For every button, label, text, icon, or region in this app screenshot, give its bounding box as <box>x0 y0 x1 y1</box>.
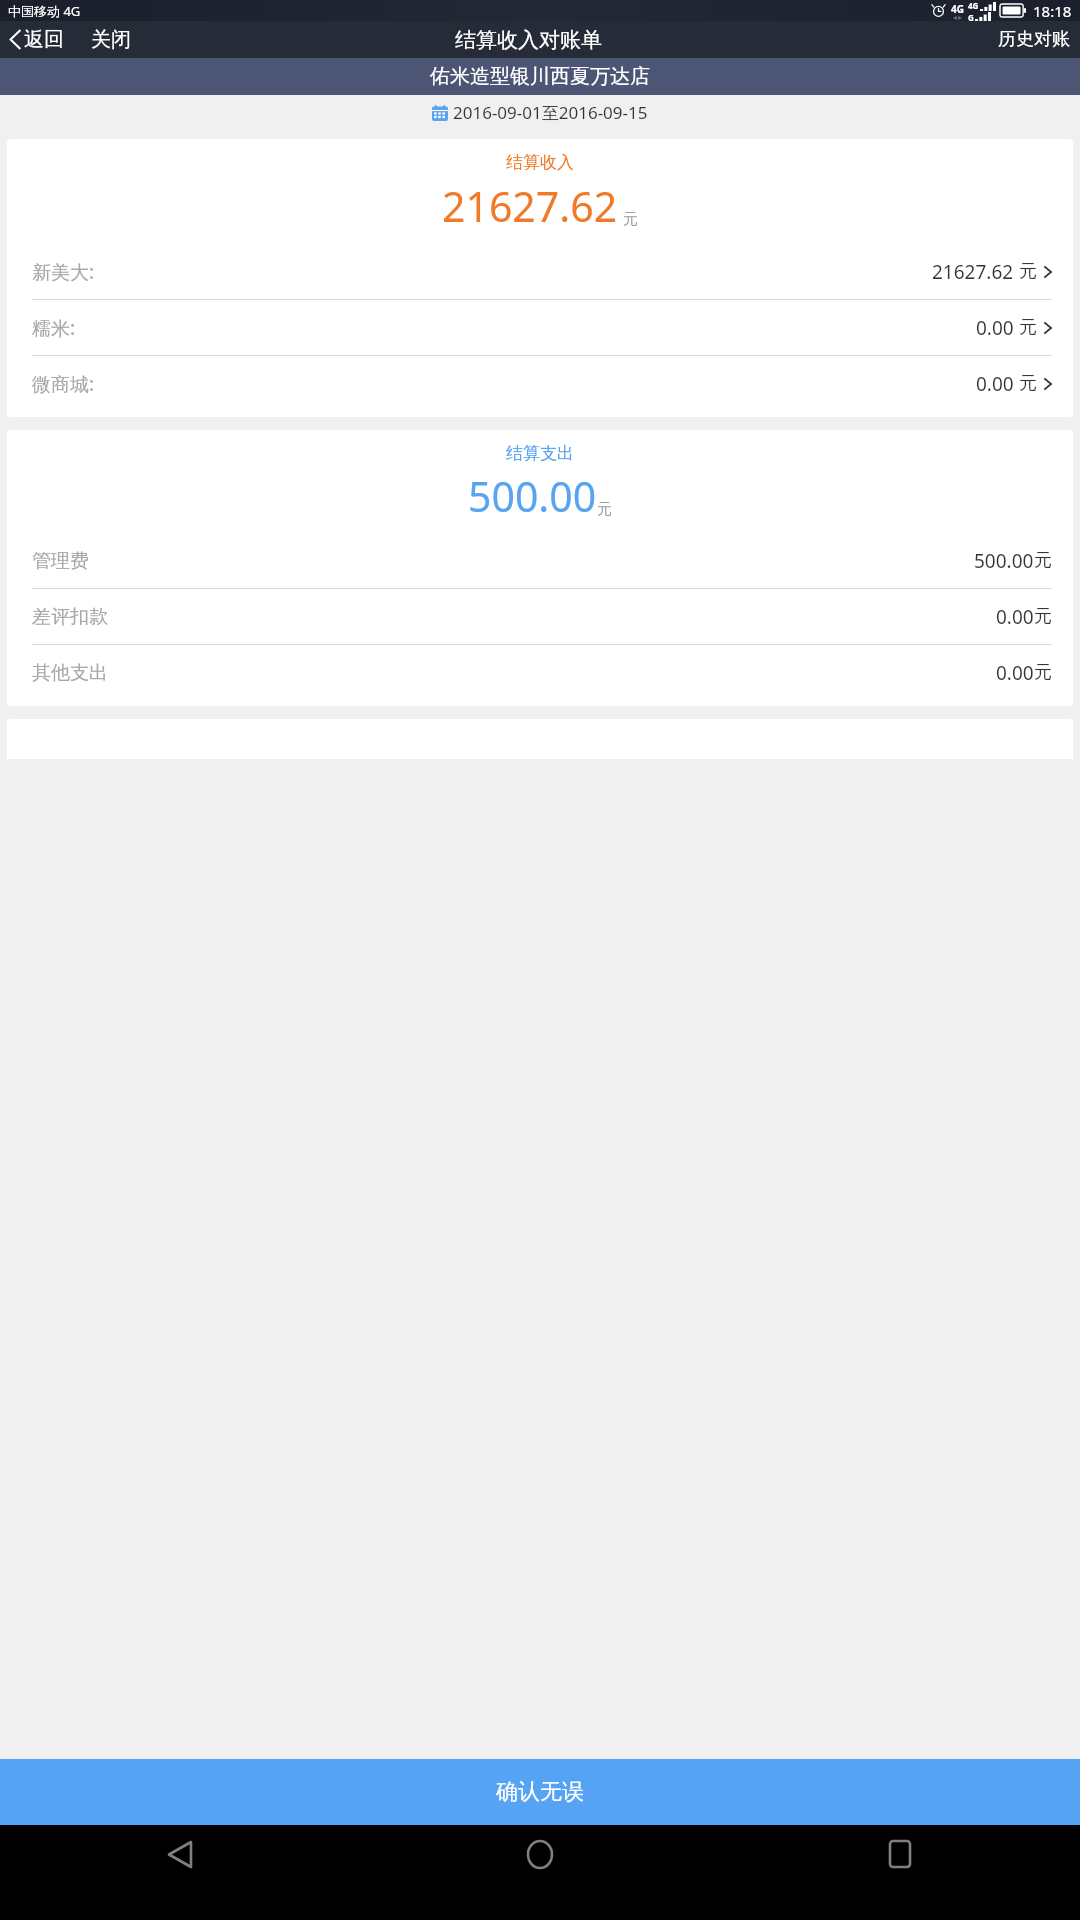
button[interactable]: Recent apps <box>720 1825 1080 1920</box>
staticText: 元 <box>597 500 612 519</box>
staticText: 元 <box>1019 316 1037 339</box>
button[interactable]: 关闭 <box>85 23 137 56</box>
staticText: 返回 <box>24 27 64 52</box>
button[interactable]: Back <box>0 1825 360 1920</box>
button[interactable]: 历史对账 <box>988 24 1080 55</box>
staticText: 元 <box>1034 661 1052 684</box>
staticText: 21627.62 <box>442 178 618 234</box>
staticText: 4G <box>951 2 964 16</box>
staticText: 差评扣款 <box>32 605 108 629</box>
staticText: 元 <box>1034 549 1052 572</box>
button[interactable]: 微商城: <box>7 356 1073 411</box>
staticText: 500.00 <box>468 468 597 524</box>
staticText: 其他支出 <box>32 661 108 685</box>
staticText: 管理费 <box>32 549 89 573</box>
staticText: 糯米: <box>32 315 76 341</box>
staticText: 4G <box>968 0 979 11</box>
staticText: 元 <box>1019 372 1037 395</box>
staticText: 佑米造型银川西夏万达店 <box>430 64 650 89</box>
staticText: 元 <box>1034 605 1052 628</box>
staticText: 历史对账 <box>998 28 1070 51</box>
staticText: 元 <box>1019 260 1037 283</box>
staticText: 0.00 <box>976 315 1014 341</box>
button[interactable]: 管理费 <box>7 533 1073 588</box>
button[interactable]: Home <box>360 1825 720 1920</box>
staticText: 2016-09-01至2016-09-15 <box>453 101 648 124</box>
staticText: 结算收入对账单 <box>455 27 602 53</box>
staticText: 0.00 <box>996 660 1034 686</box>
staticText: G <box>968 12 974 21</box>
staticText: 结算收入 <box>7 152 1073 173</box>
staticText: 0.00 <box>996 604 1034 630</box>
button[interactable]: 新美大: <box>7 244 1073 299</box>
button[interactable]: 返回 <box>0 23 70 56</box>
staticText: 新美大: <box>32 259 95 285</box>
staticText: 微商城: <box>32 371 95 397</box>
button[interactable]: 差评扣款 <box>7 589 1073 644</box>
staticText: 结算支出 <box>7 443 1073 464</box>
staticText: 确认无误 <box>496 1778 584 1806</box>
staticText: 关闭 <box>91 27 131 52</box>
staticText: 元 <box>623 210 638 229</box>
button[interactable]: 确认无误 <box>0 1759 1080 1825</box>
staticText: 21627.62 <box>932 259 1014 285</box>
staticText: 中国移动 4G <box>8 2 81 20</box>
staticText: 500.00 <box>974 548 1034 574</box>
staticText: 0.00 <box>976 371 1014 397</box>
button[interactable]: 糯米: <box>7 300 1073 355</box>
staticText: 18:18 <box>1033 1 1072 21</box>
button[interactable]: 其他支出 <box>7 645 1073 700</box>
